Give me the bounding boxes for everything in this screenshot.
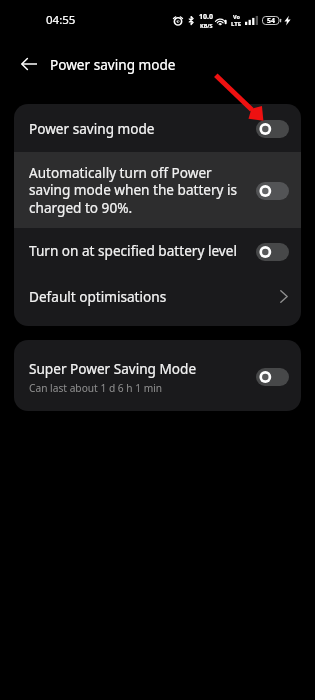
button[interactable]: Automatically turn off Power saving mode… — [14, 152, 301, 228]
staticText: 10.0 — [199, 12, 213, 22]
other: Open default optimisations — [280, 290, 288, 303]
staticText: KB/S — [200, 22, 213, 29]
staticText: 54 — [267, 16, 276, 25]
button[interactable]: Turn on at specified battery level — [14, 228, 301, 273]
button[interactable]: Toggle — [256, 182, 289, 200]
staticText: Super Power Saving Mode — [29, 359, 197, 378]
staticText: Turn on at specified battery level — [29, 241, 245, 260]
staticText: Can last about 1 d 6 h 1 min — [29, 381, 163, 395]
staticText: Automatically turn off Power saving mode… — [29, 163, 245, 217]
button[interactable]: Toggle — [256, 368, 289, 386]
button[interactable]: Toggle — [256, 120, 289, 138]
staticText: Power saving mode — [29, 119, 245, 138]
staticText: LTE — [231, 20, 242, 28]
staticText: Vo — [233, 13, 240, 20]
staticText: 04:55 — [46, 12, 76, 28]
button[interactable]: Default optimisations — [14, 273, 301, 320]
button[interactable]: Toggle — [256, 243, 289, 261]
staticText: Default optimisations — [29, 287, 280, 306]
button[interactable]: Power saving mode — [14, 104, 301, 152]
staticText: Power saving mode — [50, 55, 176, 74]
button[interactable]: Back — [13, 48, 45, 80]
button[interactable]: Super Power Saving Mode — [14, 340, 301, 411]
